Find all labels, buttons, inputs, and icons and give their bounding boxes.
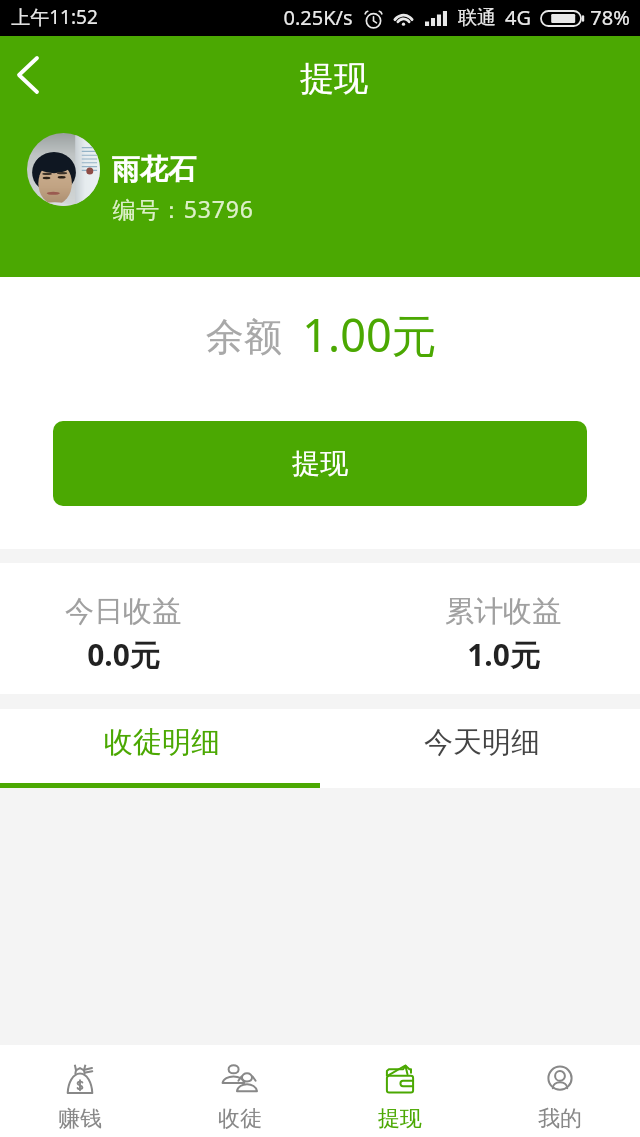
staticText: 78%	[590, 4, 630, 31]
button[interactable]: 提现	[320, 1045, 480, 1137]
staticText: 上午11:52	[11, 4, 98, 30]
button[interactable]: 赚钱	[0, 1045, 160, 1137]
staticText: 0.0元	[87, 634, 160, 675]
staticText: 我的	[538, 1105, 582, 1133]
staticText: 赚钱	[58, 1105, 102, 1133]
staticText: 收徒	[218, 1105, 262, 1133]
button[interactable]: Back	[0, 47, 56, 103]
staticText: 雨花石	[112, 152, 196, 187]
staticText: 1.0元	[467, 634, 540, 675]
staticText: 提现	[378, 1105, 422, 1133]
staticText: 今日收益	[65, 593, 181, 630]
staticText: 余额	[206, 313, 282, 361]
staticText: 提现	[300, 57, 368, 100]
staticText: 1.00元	[302, 304, 437, 365]
button[interactable]: 收徒	[160, 1045, 320, 1137]
staticText: 收徒明细	[104, 724, 220, 761]
staticText: 0.25K/s	[283, 4, 353, 31]
staticText: 提现	[292, 446, 348, 481]
staticText: 累计收益	[445, 593, 561, 630]
button[interactable]: 提现	[53, 421, 587, 506]
button[interactable]: 收徒明细	[0, 709, 320, 788]
staticText: 今天明细	[424, 724, 540, 761]
button[interactable]: 我的	[480, 1045, 640, 1137]
staticText: 联通	[458, 6, 496, 30]
staticText: 编号：53796	[112, 193, 254, 224]
button[interactable]: 今天明细	[320, 709, 640, 788]
staticText: 4G	[505, 4, 531, 31]
